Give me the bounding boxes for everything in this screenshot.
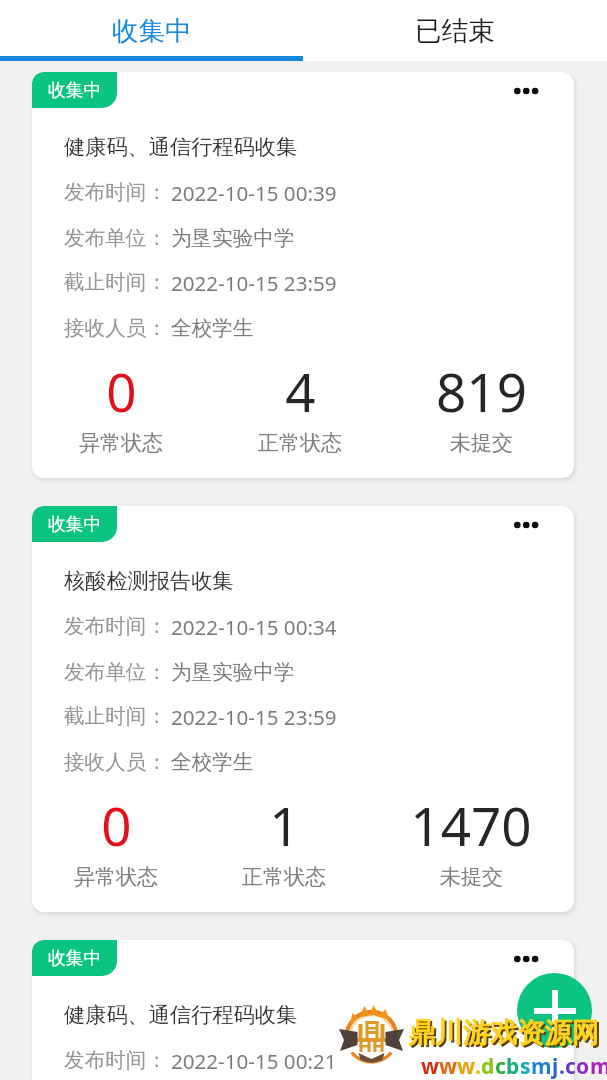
staticText: 健康码、通信行程码收集 [64,1002,298,1029]
staticText: 2022-10-15 23:59 [171,269,337,297]
staticText: 发布时间： [64,1047,167,1073]
staticText: 2022-10-15 00:34 [171,613,337,641]
staticText: 收集中 [112,14,192,48]
staticText: m [590,1052,607,1080]
staticText: 收集中 [48,79,102,101]
button[interactable]: 收集中 [32,506,574,912]
staticText: 截止时间： [64,269,167,295]
staticText: 正常状态 [258,430,342,456]
staticText: 核酸检测报告收集 [64,568,234,595]
staticText: 1 [269,789,300,861]
button[interactable]: 更多操作 [503,506,551,544]
staticText: 未提交 [450,430,513,456]
staticText: 异常状态 [79,430,163,456]
button[interactable]: 收集中 [32,940,574,1080]
staticText: 为垦实验中学 [171,225,295,251]
staticText: w [421,1052,439,1080]
staticText: 发布单位： [64,225,167,251]
staticText: 收集中 [48,513,102,535]
staticText: 0 [106,355,137,427]
staticText: w [439,1052,457,1080]
button[interactable]: 收集中 [32,506,117,542]
staticText: 为垦实验中学 [171,659,295,685]
staticText: 鼎川游戏资源网 [408,1016,600,1050]
staticText: 0 [101,789,132,861]
staticText: s [520,1052,531,1080]
staticText: w [457,1052,475,1080]
button[interactable]: 新建收集 [517,973,592,1048]
button[interactable]: 收集中 [32,940,117,976]
staticText: c [495,1052,506,1080]
staticText: d [481,1052,495,1080]
staticText: . [475,1052,481,1080]
staticText: 异常状态 [74,864,158,890]
button[interactable]: 收集中 [32,72,574,478]
staticText: m [531,1052,552,1080]
staticText: 截止时间： [64,703,167,729]
staticText: 819 [436,355,527,427]
staticText: 2022-10-15 00:39 [171,179,337,207]
staticText: 全校学生 [171,315,254,341]
staticText: 未提交 [440,864,503,890]
staticText: b [506,1052,520,1080]
staticText: 健康码、通信行程码收集 [64,134,298,161]
staticText: 发布时间： [64,613,167,639]
staticText: 接收人员： [64,749,167,775]
staticText: 收集中 [48,947,102,969]
staticText: 正常状态 [242,864,326,890]
staticText: 发布时间： [64,179,167,205]
staticText: 4 [285,355,316,427]
staticText: . [559,1052,565,1080]
staticText: 2022-10-15 00:21 [171,1047,337,1075]
staticText: 全校学生 [171,749,254,775]
staticText: 2022-10-15 23:59 [171,703,337,731]
staticText: o [576,1052,590,1080]
button[interactable]: 收集中 [0,0,303,61]
staticText: 1470 [410,789,532,861]
staticText: 发布单位： [64,659,167,685]
button[interactable]: 已结束 [303,0,607,61]
staticText: 接收人员： [64,315,167,341]
button[interactable]: 收集中 [32,72,117,108]
staticText: j [552,1052,559,1080]
button[interactable]: 更多操作 [503,940,551,978]
button[interactable]: 更多操作 [503,72,551,110]
staticText: 鼎川游戏资源网 [410,1018,602,1052]
staticText: 已结束 [415,14,495,48]
staticText: c [565,1052,576,1080]
